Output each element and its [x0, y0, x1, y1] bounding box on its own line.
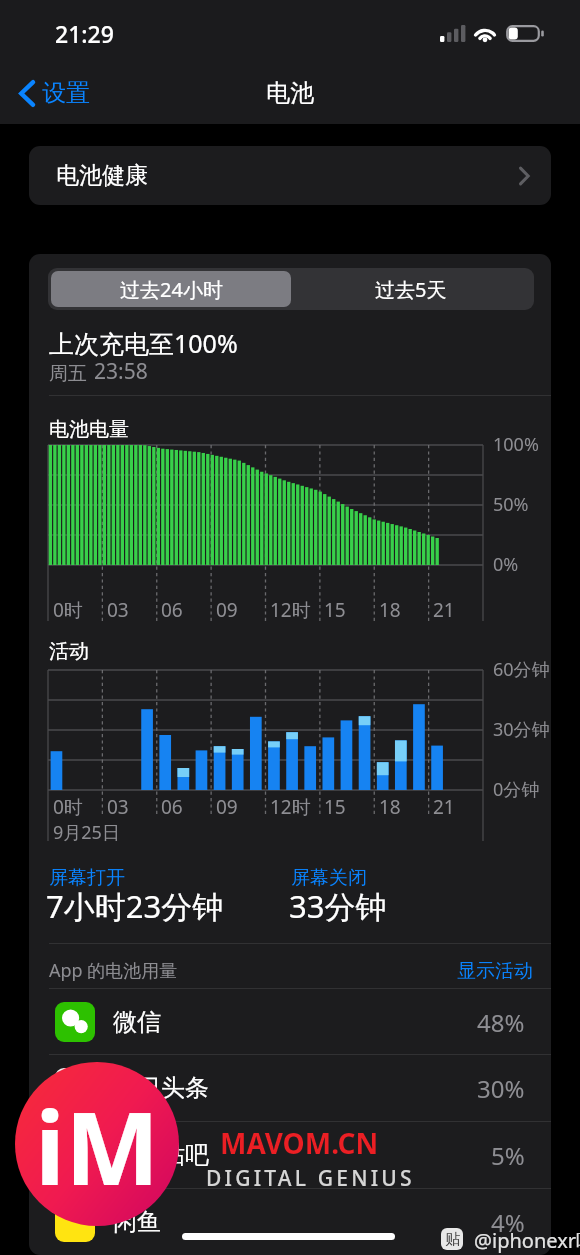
staticText: 0时 [53, 794, 83, 820]
staticText: 09 [216, 794, 238, 820]
staticText: 06 [161, 597, 183, 623]
staticText: 电池健康 [56, 161, 148, 190]
staticText: 微信 [113, 1007, 161, 1037]
staticText: 0分钟 [493, 777, 540, 802]
staticText: 7小时23分钟 [46, 885, 224, 927]
staticText: 03 [107, 597, 129, 623]
staticText: 18 [379, 794, 401, 820]
staticText: 50% [493, 492, 529, 517]
staticText: 4% [491, 1206, 525, 1239]
staticText: 显示活动 [457, 959, 533, 983]
staticText: 贴 [445, 1230, 460, 1249]
staticText: 09 [216, 597, 238, 623]
staticText: 18 [379, 597, 401, 623]
staticText: 30分钟 [493, 717, 550, 742]
staticText: 15 [324, 794, 346, 820]
button[interactable]: 百度贴吧 [29, 1122, 551, 1188]
staticText: 5% [491, 1139, 525, 1172]
staticText: 百度贴吧 [113, 1140, 209, 1170]
staticText: 电池电量 [49, 417, 129, 442]
button[interactable]: 过去5天 [291, 271, 531, 307]
button[interactable]: 微信 [29, 989, 551, 1055]
staticText: 闲鱼 [113, 1207, 161, 1237]
staticText: 0% [493, 552, 519, 577]
staticText: 屏幕打开 [49, 866, 125, 890]
staticText: 12时 [270, 597, 311, 623]
staticText: MAVOM.CN [220, 1124, 379, 1162]
button[interactable]: 电池健康 [29, 146, 551, 205]
staticText: 过去5天 [375, 276, 447, 303]
staticText: DIGITAL GENIUS [206, 1164, 415, 1193]
staticText: 电池 [266, 78, 314, 108]
staticText: 21 [433, 597, 455, 623]
staticText: 21 [433, 794, 455, 820]
button[interactable]: 设置 [14, 74, 95, 112]
staticText: 过去24小时 [120, 276, 223, 303]
button[interactable]: 过去24小时 [51, 271, 291, 307]
staticText: 今日头条 [113, 1073, 209, 1103]
staticText: App 的电池用量 [49, 958, 178, 983]
staticText: 100% [493, 432, 539, 457]
staticText: iM [35, 1078, 160, 1214]
staticText: 活动 [49, 639, 89, 664]
staticText: 上次充电至100% [49, 326, 238, 360]
staticText: 屏幕关闭 [291, 866, 367, 890]
staticText: 48% [477, 1006, 525, 1039]
staticText: 0时 [53, 597, 83, 623]
staticText: 15 [324, 597, 346, 623]
staticText: 设置 [42, 78, 90, 108]
button[interactable]: 闲鱼 [29, 1189, 551, 1255]
staticText: 33分钟 [289, 885, 387, 927]
staticText: 9月25日 [53, 820, 120, 845]
staticText: @iphonexr吧 [474, 1227, 580, 1254]
staticText: 周五 [49, 362, 87, 386]
staticText: 30% [477, 1072, 525, 1105]
staticText: 03 [107, 794, 129, 820]
staticText: 60分钟 [493, 657, 550, 682]
button[interactable]: 显示活动 [457, 959, 533, 983]
staticText: 21:29 [55, 18, 114, 49]
staticText: 12时 [270, 794, 311, 820]
staticText: 23:58 [94, 357, 148, 386]
staticText: 06 [161, 794, 183, 820]
button[interactable]: 今日头条 [29, 1055, 551, 1121]
